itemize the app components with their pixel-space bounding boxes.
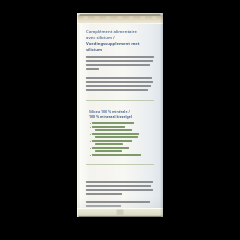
staticText: Voedingssupplement met silicium bbox=[86, 41, 156, 52]
staticText: avec silicium / bbox=[86, 35, 115, 41]
staticText: Silicea 100 % minérale / bbox=[89, 109, 130, 114]
staticText: 100 % mineraal kiezelgel bbox=[89, 114, 132, 119]
button[interactable]: Silicea supplement carton, back panel bbox=[77, 13, 163, 217]
staticText: Complément alimentaire bbox=[86, 29, 137, 35]
